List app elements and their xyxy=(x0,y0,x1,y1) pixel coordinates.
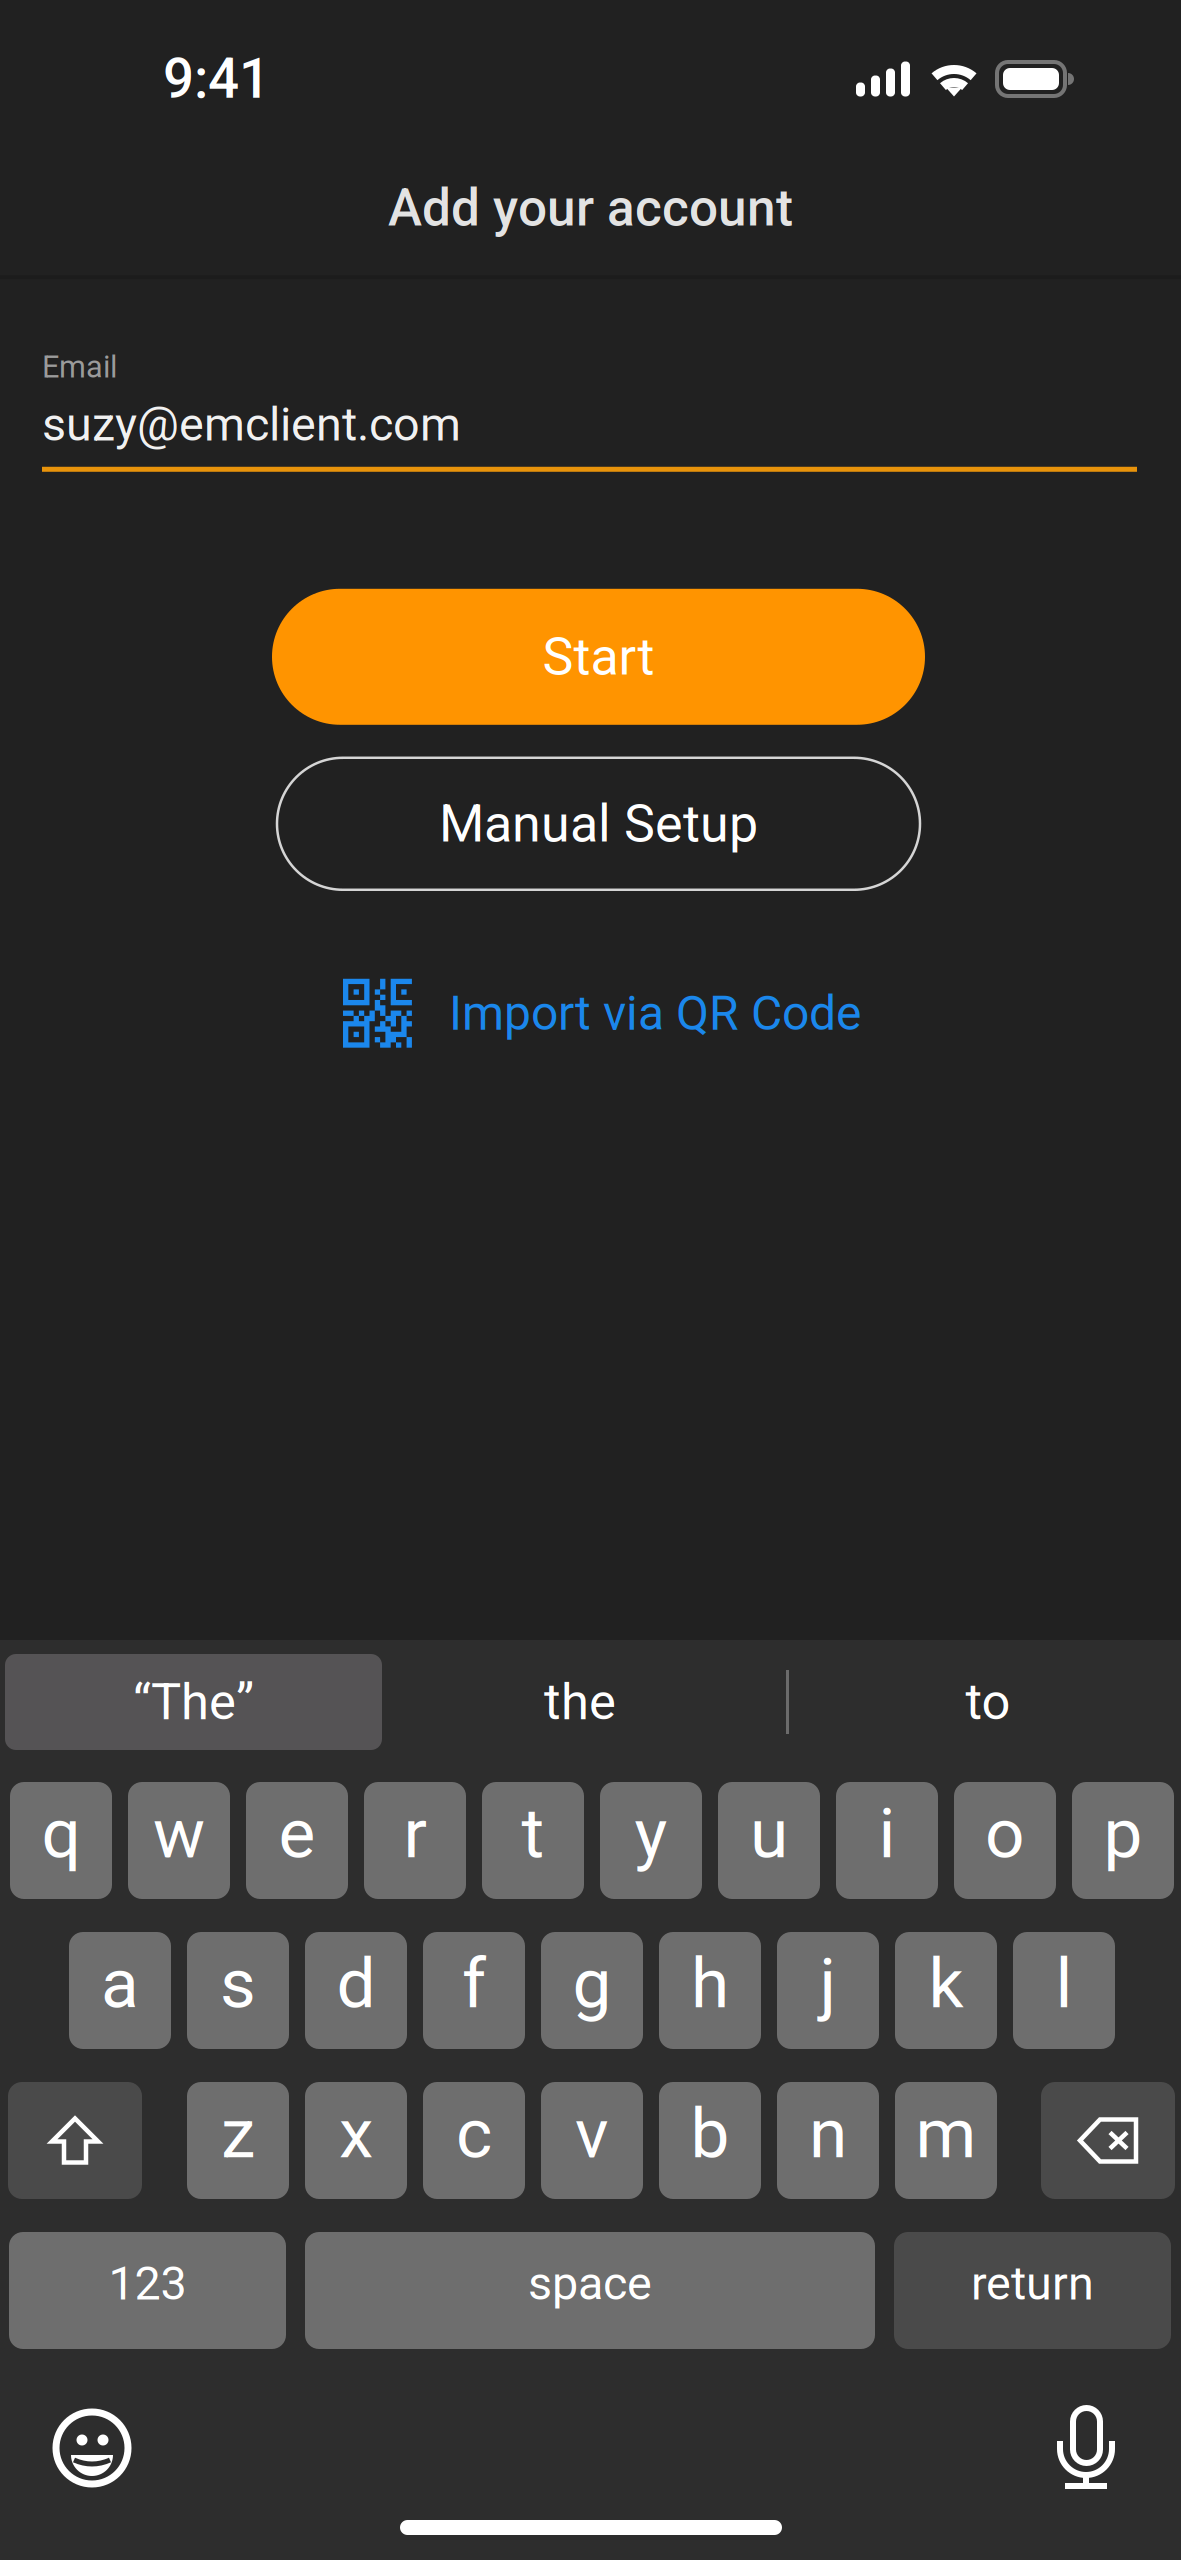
staticText: k xyxy=(928,1943,963,2024)
staticText: s xyxy=(220,1943,256,2024)
staticText: 9:41 xyxy=(163,47,270,111)
staticText: t xyxy=(521,1793,544,1874)
staticText: suzy@emclient.com xyxy=(42,397,461,452)
button[interactable]: Manual Setup xyxy=(277,758,920,890)
button[interactable]: h xyxy=(659,1932,761,2049)
button[interactable]: n xyxy=(777,2082,879,2199)
button[interactable]: the xyxy=(480,1654,680,1750)
staticText: Import via QR Code xyxy=(449,985,861,1041)
button[interactable]: to xyxy=(888,1654,1088,1750)
button[interactable]: m xyxy=(895,2082,997,2199)
button[interactable]: Delete xyxy=(1041,2082,1175,2199)
staticText: space xyxy=(528,2256,652,2311)
button[interactable]: s xyxy=(187,1932,289,2049)
staticText: q xyxy=(41,1793,80,1874)
button[interactable]: j xyxy=(777,1932,879,2049)
button[interactable]: return xyxy=(894,2232,1171,2349)
staticText: c xyxy=(456,2093,492,2174)
staticText: return xyxy=(971,2256,1094,2311)
staticText: 123 xyxy=(108,2256,186,2311)
button[interactable]: v xyxy=(541,2082,643,2199)
button[interactable]: “The” xyxy=(5,1654,382,1750)
staticText: o xyxy=(985,1793,1025,1874)
staticText: Add your account xyxy=(388,178,793,238)
button[interactable]: g xyxy=(541,1932,643,2049)
button[interactable]: c xyxy=(423,2082,525,2199)
staticText: x xyxy=(339,2093,373,2174)
staticText: j xyxy=(819,1943,836,2024)
staticText: Start xyxy=(542,626,654,687)
button[interactable]: z xyxy=(187,2082,289,2199)
button[interactable]: Import via QR Code xyxy=(343,963,861,1064)
button[interactable]: u xyxy=(718,1782,820,1899)
staticText: d xyxy=(336,1943,375,2024)
button[interactable]: q xyxy=(10,1782,112,1899)
staticText: h xyxy=(691,1943,729,2024)
button[interactable]: i xyxy=(836,1782,938,1899)
staticText: the xyxy=(544,1672,616,1732)
staticText: to xyxy=(965,1672,1010,1732)
staticText: u xyxy=(750,1793,788,1874)
button[interactable]: x xyxy=(305,2082,407,2199)
button[interactable]: a xyxy=(69,1932,171,2049)
button[interactable]: Emoji keyboard xyxy=(53,2409,131,2487)
staticText: z xyxy=(221,2093,255,2174)
staticText: n xyxy=(809,2093,847,2174)
button[interactable]: Shift xyxy=(8,2082,142,2199)
staticText: m xyxy=(915,2093,976,2174)
button[interactable]: f xyxy=(423,1932,525,2049)
button[interactable]: e xyxy=(246,1782,348,1899)
button[interactable]: k xyxy=(895,1932,997,2049)
staticText: “The” xyxy=(133,1672,254,1732)
button[interactable]: Start xyxy=(272,589,925,725)
button[interactable]: 123 xyxy=(9,2232,286,2349)
button[interactable]: o xyxy=(954,1782,1056,1899)
staticText: i xyxy=(878,1793,895,1874)
staticText: Email xyxy=(42,349,117,385)
staticText: g xyxy=(572,1943,611,2024)
staticText: Manual Setup xyxy=(439,793,758,854)
staticText: e xyxy=(278,1793,315,1874)
staticText: a xyxy=(101,1943,139,2024)
button[interactable]: r xyxy=(364,1782,466,1899)
button[interactable]: space xyxy=(305,2232,875,2349)
staticText: w xyxy=(153,1793,205,1874)
staticText: r xyxy=(403,1793,426,1874)
button[interactable]: d xyxy=(305,1932,407,2049)
button[interactable]: p xyxy=(1072,1782,1174,1899)
staticText: y xyxy=(634,1793,667,1874)
button[interactable]: l xyxy=(1013,1932,1115,2049)
staticText: b xyxy=(690,2093,729,2174)
staticText: p xyxy=(1103,1793,1142,1874)
staticText: f xyxy=(462,1943,486,2024)
button[interactable]: t xyxy=(482,1782,584,1899)
staticText: l xyxy=(1055,1943,1072,2024)
staticText: v xyxy=(575,2093,609,2174)
button[interactable]: w xyxy=(128,1782,230,1899)
button[interactable]: y xyxy=(600,1782,702,1899)
button[interactable]: Dictation xyxy=(1055,2405,1118,2492)
button[interactable]: b xyxy=(659,2082,761,2199)
